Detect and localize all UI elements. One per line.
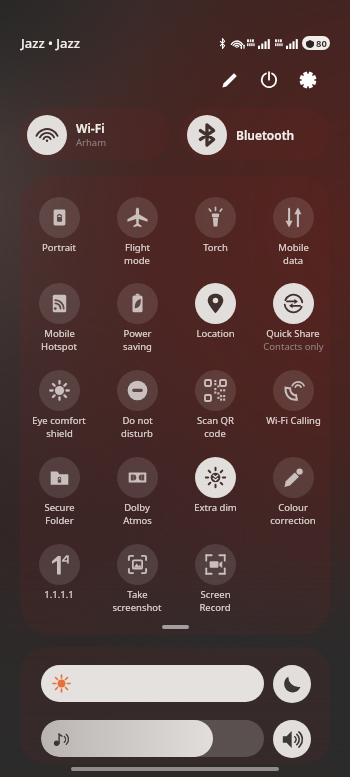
button[interactable]: 1.1.1.1 xyxy=(20,544,98,624)
button[interactable]: Power xyxy=(98,283,176,363)
staticText: Power xyxy=(123,327,152,340)
staticText: Mobile xyxy=(278,241,309,254)
staticText: Wi-Fi Calling xyxy=(266,414,321,427)
staticText: Bluetooth xyxy=(236,127,295,143)
staticText: Dolby xyxy=(124,501,150,514)
staticText: Jazz • Jazz xyxy=(21,34,80,52)
button[interactable]: Secure xyxy=(20,457,98,537)
button[interactable]: Scan QR xyxy=(176,370,254,450)
staticText: Hotspot xyxy=(41,340,77,353)
staticText: Mobile xyxy=(44,327,75,340)
button[interactable]: Edit xyxy=(215,68,245,92)
button[interactable] xyxy=(41,720,264,757)
button[interactable]: Dolby xyxy=(98,457,176,537)
staticText: Atmos xyxy=(123,514,152,527)
staticText: mode xyxy=(124,254,150,267)
staticText: Torch xyxy=(203,241,228,254)
staticText: saving xyxy=(123,340,152,353)
staticText: data xyxy=(283,254,303,267)
staticText: Folder xyxy=(45,514,74,527)
staticText: Do not xyxy=(122,414,153,427)
staticText: Quick Share xyxy=(266,327,320,340)
button[interactable]: Quick Share xyxy=(254,283,330,363)
staticText: Record xyxy=(199,601,231,614)
staticText: correction xyxy=(270,514,316,527)
staticText: Eye comfort xyxy=(32,414,86,427)
button[interactable]: Mobile xyxy=(254,197,330,277)
staticText: Secure xyxy=(44,501,75,514)
button[interactable]: Portrait xyxy=(20,197,98,277)
button[interactable]: Colour xyxy=(254,457,330,537)
button[interactable]: Location xyxy=(176,283,254,363)
staticText: Wi-Fi xyxy=(76,120,105,136)
staticText: Scan QR xyxy=(197,414,234,427)
staticText: Take xyxy=(127,588,148,601)
staticText: Screen xyxy=(200,588,231,601)
staticText: screenshot xyxy=(112,601,162,614)
staticText: code xyxy=(204,427,226,440)
button[interactable]: Settings xyxy=(293,68,323,92)
button[interactable]: Torch xyxy=(176,197,254,277)
button[interactable]: Mobile xyxy=(20,283,98,363)
button[interactable]: Flight xyxy=(98,197,176,277)
button[interactable]: Volume xyxy=(273,720,311,758)
staticText: shield xyxy=(46,427,73,440)
button[interactable] xyxy=(41,665,264,702)
staticText: Contacts only xyxy=(263,340,324,353)
staticText: Arham xyxy=(76,136,107,149)
staticText: disturb xyxy=(121,427,153,440)
staticText: 1.1.1.1 xyxy=(44,588,74,601)
button[interactable]: Do not xyxy=(98,370,176,450)
staticText: Flight xyxy=(125,241,150,254)
button[interactable]: Extra dim xyxy=(176,457,254,537)
staticText: Extra dim xyxy=(194,501,237,514)
staticText: Location xyxy=(196,327,235,340)
button[interactable]: Screen xyxy=(176,544,254,624)
staticText: 80 xyxy=(316,37,327,50)
button[interactable]: Power xyxy=(254,68,284,92)
staticText: Portrait xyxy=(42,241,76,254)
button[interactable]: Do not disturb xyxy=(273,665,311,703)
button[interactable]: Wi-Fi xyxy=(20,108,170,161)
button[interactable]: Wi-Fi Calling xyxy=(254,370,330,450)
button[interactable]: Bluetooth xyxy=(180,108,330,161)
staticText: Colour xyxy=(278,501,308,514)
button[interactable]: Take xyxy=(98,544,176,624)
button[interactable]: Eye comfort xyxy=(20,370,98,450)
